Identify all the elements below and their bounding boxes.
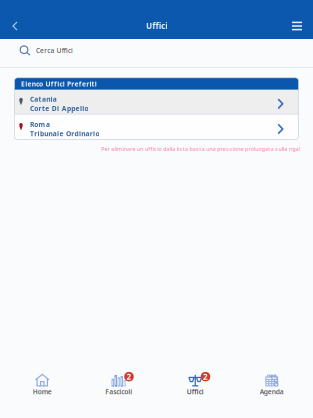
- button[interactable]: 2: [80, 370, 157, 398]
- staticText: Per eliminare un ufficio dalla lista bas…: [101, 145, 300, 153]
- staticText: Uffici: [146, 21, 167, 31]
- button[interactable]: Agenda: [233, 370, 310, 398]
- button[interactable]: Catania: [14, 90, 298, 114]
- staticText: Roma: [30, 120, 50, 129]
- button[interactable]: Back: [0, 16, 30, 36]
- staticText: Elenco Uffici Preferiti: [21, 79, 97, 88]
- staticText: 2: [203, 371, 208, 382]
- staticText: Tribunale Ordinario: [30, 129, 99, 138]
- staticText: Fascicoli: [105, 387, 132, 396]
- button[interactable]: 2: [157, 370, 233, 398]
- staticText: Corte Di Appello: [30, 104, 88, 113]
- button[interactable]: Menu: [281, 16, 313, 36]
- staticText: Uffici: [187, 387, 204, 396]
- staticText: 2: [126, 371, 131, 382]
- staticText: Agenda: [260, 387, 284, 396]
- staticText: Cerca Uffici: [36, 46, 73, 55]
- staticText: Home: [33, 387, 52, 396]
- staticText: Catania: [30, 95, 57, 104]
- button[interactable]: Roma: [14, 114, 298, 139]
- button[interactable]: Home: [4, 370, 80, 398]
